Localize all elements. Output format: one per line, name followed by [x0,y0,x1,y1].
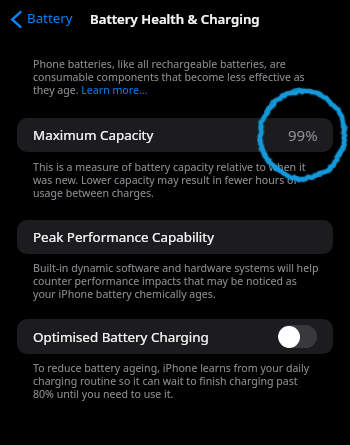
staticText: To reduce battery ageing, iPhone learns … [33,361,321,401]
staticText: Phone batteries, like all rechargeable b… [33,57,321,97]
staticText: Peak Performance Capability [33,228,214,246]
staticText: 99% [288,125,318,145]
staticText: This is a measure of battery capacity re… [33,160,321,200]
staticText: Built-in dynamic software and hardware s… [33,261,321,301]
staticText: Maximum Capacity [33,126,154,144]
button[interactable]: Peak Performance Capability [17,220,333,254]
staticText: Optimised Battery Charging [33,328,209,346]
staticText: Battery Health & Charging [90,10,260,28]
button[interactable]: Back to Battery [5,7,79,31]
button[interactable]: Optimised Battery Charging toggle [278,325,317,348]
staticText: Battery [27,9,73,27]
button[interactable]: Maximum Capacity [17,118,333,152]
button[interactable]: Optimised Battery Charging [17,319,333,354]
